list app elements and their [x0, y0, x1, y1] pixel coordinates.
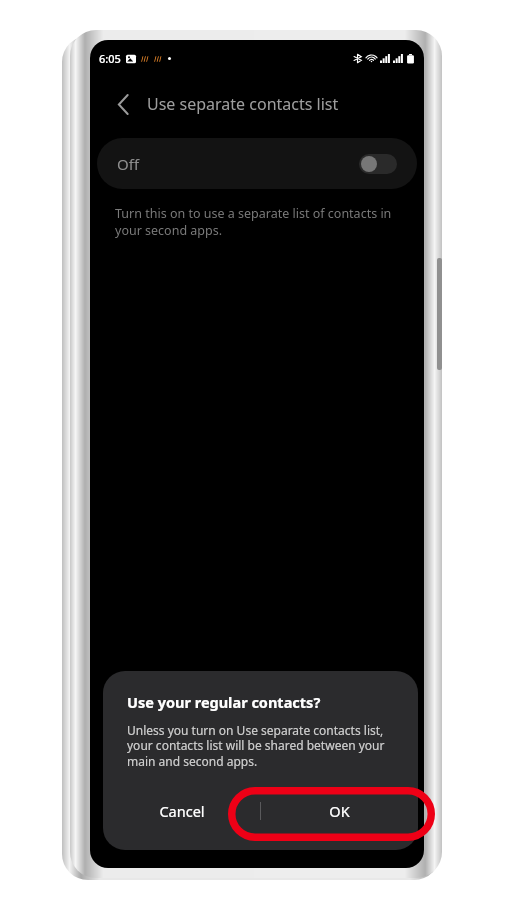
staticText: Unless you turn on Use separate contacts… [127, 722, 394, 770]
staticText: Use your regular contacts? [127, 692, 321, 712]
staticText: Use separate contacts list [147, 93, 339, 115]
button[interactable]: Off [97, 138, 417, 189]
staticText: Turn this on to use a separate list of c… [115, 205, 399, 239]
staticText: 6:05 [99, 51, 121, 66]
button[interactable]: Back [110, 91, 136, 117]
staticText: OK [329, 801, 350, 821]
button[interactable]: Cancel [103, 788, 260, 834]
staticText: Cancel [159, 801, 205, 821]
button[interactable]: OK [260, 788, 418, 834]
staticText: Off [117, 154, 140, 174]
